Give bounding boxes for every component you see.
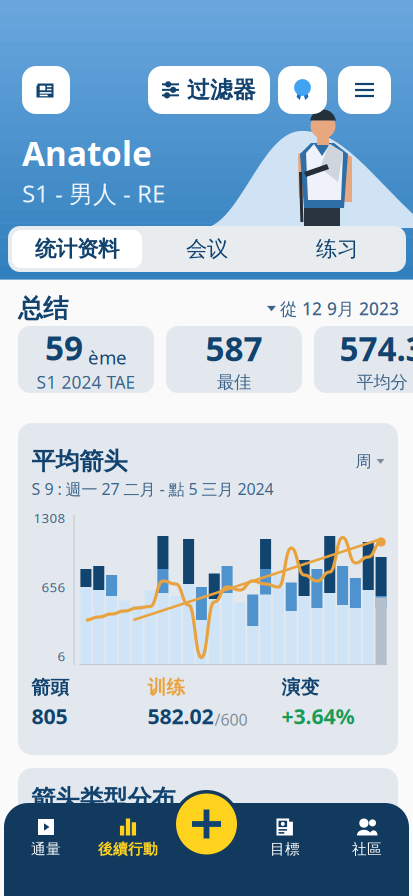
button[interactable]: Menu — [338, 66, 391, 114]
staticText: 6 — [57, 647, 65, 665]
button[interactable]: 從 12 9月 2023 — [267, 297, 399, 320]
staticText: 箭頭 — [31, 676, 69, 699]
staticText: 574.3 — [339, 326, 413, 370]
button[interactable]: 目標 — [244, 812, 326, 864]
staticText: 社區 — [352, 840, 382, 858]
staticText: 箭头类型分布 — [31, 784, 175, 813]
button[interactable]: 通量 — [5, 812, 87, 864]
staticText: 582.02 — [147, 702, 213, 730]
staticText: S 9 : 週一 27 二月 - 點 5 三月 2024 — [31, 478, 273, 499]
button[interactable]: 练习 — [272, 230, 402, 268]
staticText: +3.64% — [281, 702, 354, 730]
button[interactable]: 统计资料 — [12, 230, 142, 268]
staticText: 後續行動 — [98, 840, 158, 858]
staticText: 演变 — [281, 676, 319, 699]
staticText: 统计资料 — [35, 236, 119, 262]
staticText: ème — [88, 345, 127, 370]
staticText: 周 — [355, 452, 371, 471]
staticText: 过滤器 — [187, 76, 256, 104]
button[interactable]: 过滤器 — [148, 66, 270, 114]
staticText: 训练 — [147, 676, 185, 699]
staticText: 目標 — [270, 840, 300, 858]
staticText: 59 — [45, 325, 83, 370]
staticText: 從 12 9月 2023 — [280, 297, 399, 320]
staticText: 平均箭头 — [31, 447, 127, 476]
staticText: Anatole — [22, 131, 152, 175]
staticText: 会议 — [186, 236, 228, 262]
button[interactable]: 社區 — [326, 812, 408, 864]
staticText: /600 — [214, 709, 247, 730]
staticText: S1 - 男人 - RE — [22, 177, 165, 209]
staticText: 656 — [41, 578, 65, 596]
staticText: S1 2024 TAE — [36, 371, 135, 394]
staticText: 练习 — [316, 236, 358, 262]
staticText: 总结 — [18, 293, 68, 324]
button[interactable]: 会议 — [142, 230, 272, 268]
staticText: 587 — [205, 326, 262, 370]
staticText: 805 — [31, 702, 67, 730]
button[interactable]: Badges — [278, 66, 327, 114]
staticText: 平均分 — [356, 371, 407, 393]
staticText: 通量 — [31, 840, 61, 858]
button[interactable]: 後續行動 — [87, 812, 169, 864]
staticText: 1308 — [33, 509, 65, 527]
staticText: 最佳 — [217, 371, 251, 393]
button[interactable]: News — [22, 66, 70, 114]
button[interactable]: 周 — [355, 452, 384, 471]
button[interactable]: Add — [170, 788, 242, 860]
